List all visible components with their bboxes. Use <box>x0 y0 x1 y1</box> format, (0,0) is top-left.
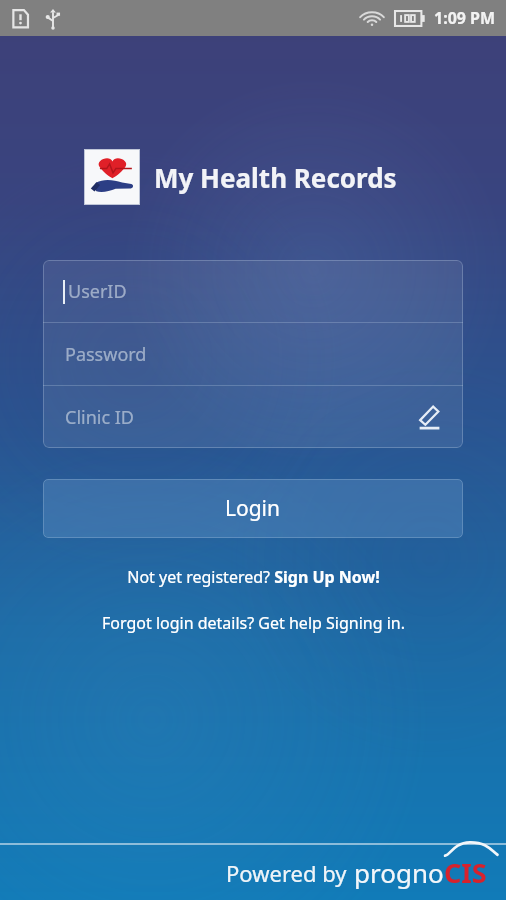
staticText: CIS <box>444 854 487 891</box>
button[interactable]: Forgot login details? Get help Signing i… <box>0 612 506 634</box>
staticText: 1:09 PM <box>434 7 496 29</box>
staticText: Password <box>65 342 147 367</box>
staticText: Forgot login details? Get help Signing i… <box>102 612 405 634</box>
staticText: Not yet registered? Sign Up Now! <box>127 566 380 588</box>
button[interactable]: Password <box>43 323 463 385</box>
staticText: UserID <box>68 279 127 304</box>
staticText: progno <box>354 855 444 890</box>
button[interactable]: Login <box>43 479 463 538</box>
button[interactable]: Clinic ID <box>43 386 463 448</box>
staticText: Login <box>225 494 281 523</box>
staticText: My Health Records <box>154 160 397 195</box>
button[interactable]: UserID <box>43 260 463 322</box>
button[interactable]: Not yet registered? Sign Up Now! <box>0 566 506 588</box>
staticText: Clinic ID <box>65 405 134 430</box>
button[interactable]: Edit Clinic ID <box>411 399 447 435</box>
staticText: Powered by <box>226 858 347 888</box>
